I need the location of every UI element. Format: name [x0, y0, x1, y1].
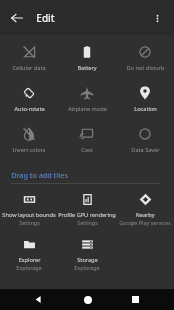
button[interactable]: Storage — [58, 232, 116, 277]
button[interactable]: Invert colors — [0, 120, 58, 161]
button[interactable]: Battery — [58, 38, 116, 79]
staticText: Data Saver — [131, 146, 160, 154]
staticText: Battery — [77, 64, 97, 72]
staticText: Cellular data — [12, 64, 46, 72]
button[interactable]: Show layout bounds — [0, 187, 58, 232]
staticText: Auto-rotate — [14, 105, 45, 113]
button[interactable]: Recent apps — [125, 289, 146, 310]
staticText: Edit — [36, 11, 55, 25]
button[interactable]: Location — [116, 79, 174, 120]
button[interactable]: Explorer — [0, 232, 58, 277]
button[interactable]: Airplane mode — [58, 79, 116, 120]
button[interactable]: Nearby — [116, 187, 174, 232]
staticText: Explorer — [18, 256, 41, 264]
staticText: Location — [134, 105, 157, 113]
staticText: Drag to add tiles — [11, 170, 68, 180]
button[interactable]: Back — [5, 6, 29, 30]
staticText: Show layout bounds — [2, 211, 56, 219]
staticText: Settings — [19, 219, 40, 226]
button[interactable]: Back — [28, 289, 49, 310]
staticText: Airplane mode — [68, 105, 107, 113]
staticText: Do not disturb — [126, 64, 165, 72]
staticText: Settings — [77, 219, 98, 226]
staticText: Explorage — [16, 264, 42, 271]
button[interactable]: Profile GPU rendering — [58, 187, 116, 232]
staticText: Profile GPU rendering — [58, 211, 116, 219]
button[interactable]: Auto-rotate — [0, 79, 58, 120]
button[interactable]: Cellular data — [0, 38, 58, 79]
button[interactable]: Do not disturb — [116, 38, 174, 79]
button[interactable]: More options — [145, 6, 169, 30]
button[interactable]: Cast — [58, 120, 116, 161]
staticText: Google Play services — [119, 219, 171, 226]
button[interactable]: Home — [77, 289, 98, 310]
staticText: Invert colors — [12, 146, 46, 154]
button[interactable]: Data Saver — [116, 120, 174, 161]
staticText: Storage — [77, 256, 98, 264]
staticText: Cast — [81, 146, 93, 154]
staticText: Explorage — [74, 264, 100, 271]
staticText: Nearby — [135, 211, 155, 219]
